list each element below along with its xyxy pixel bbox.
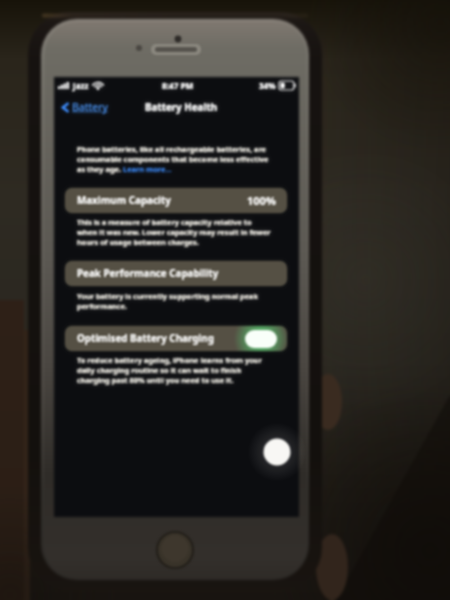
button[interactable]: Peak Performance Capability bbox=[65, 261, 287, 286]
button[interactable]: Maximum Capacity bbox=[65, 188, 287, 213]
staticText: Optimised Battery Charging bbox=[77, 332, 214, 345]
button[interactable]: Peak Performance Capability bbox=[65, 261, 287, 286]
button[interactable]: Optimised Battery Charging switch bbox=[245, 330, 277, 348]
staticText: To reduce battery ageing, iPhone learns … bbox=[77, 355, 262, 365]
other: Back bbox=[62, 102, 69, 113]
staticText: Battery bbox=[72, 100, 108, 114]
staticText: Maximum Capacity bbox=[77, 194, 171, 207]
button[interactable]: Back bbox=[59, 97, 111, 117]
staticText: as they age. bbox=[77, 164, 123, 174]
staticText: Jazz bbox=[73, 80, 89, 91]
button[interactable]: Learn more... bbox=[123, 164, 172, 174]
staticText: as they age. bbox=[77, 164, 123, 174]
staticText: consumable components that become less e… bbox=[77, 154, 269, 164]
staticText: charging past 80% until you need to use … bbox=[77, 375, 234, 385]
button[interactable]: Back bbox=[59, 97, 111, 117]
staticText: Your battery is currently supporting nor… bbox=[77, 291, 259, 301]
staticText: This is a measure of battery capacity re… bbox=[77, 217, 252, 227]
other: Back bbox=[62, 102, 69, 113]
staticText: 100% bbox=[247, 193, 276, 208]
staticText: Optimised Battery Charging bbox=[77, 332, 214, 345]
staticText: 8:47 PM bbox=[162, 80, 194, 91]
button[interactable]: Learn more... bbox=[123, 164, 172, 174]
staticText: hours of usage between charges. bbox=[77, 237, 199, 247]
staticText: when it was new. Lower capacity may resu… bbox=[77, 227, 271, 237]
button[interactable]: Optimised Battery Charging switch bbox=[245, 330, 277, 348]
staticText: To reduce battery ageing, iPhone learns … bbox=[77, 355, 262, 365]
staticText: daily charging routine so it can wait to… bbox=[77, 365, 242, 375]
staticText: Battery Health bbox=[145, 101, 218, 114]
staticText: daily charging routine so it can wait to… bbox=[77, 365, 242, 375]
staticText: 34% bbox=[259, 80, 276, 91]
staticText: Phone batteries, like all rechargeable b… bbox=[77, 144, 266, 154]
button[interactable]: Maximum Capacity bbox=[65, 188, 287, 213]
staticText: Peak Performance Capability bbox=[77, 267, 219, 280]
staticText: Phone batteries, like all rechargeable b… bbox=[77, 144, 266, 154]
staticText: 34% bbox=[259, 80, 276, 91]
staticText: charging past 80% until you need to use … bbox=[77, 375, 234, 385]
staticText: 100% bbox=[247, 193, 276, 208]
staticText: Maximum Capacity bbox=[77, 194, 171, 207]
staticText: consumable components that become less e… bbox=[77, 154, 269, 164]
staticText: Your battery is currently supporting nor… bbox=[77, 291, 259, 301]
staticText: hours of usage between charges. bbox=[77, 237, 199, 247]
staticText: when it was new. Lower capacity may resu… bbox=[77, 227, 271, 237]
button[interactable]: Optimised Battery Charging bbox=[65, 326, 287, 351]
button[interactable]: Optimised Battery Charging bbox=[65, 326, 287, 351]
staticText: Peak Performance Capability bbox=[77, 267, 219, 280]
staticText: Battery bbox=[72, 100, 108, 114]
staticText: 8:47 PM bbox=[162, 80, 194, 91]
staticText: performance. bbox=[77, 301, 127, 311]
staticText: performance. bbox=[77, 301, 127, 311]
staticText: Battery Health bbox=[145, 101, 218, 114]
staticText: This is a measure of battery capacity re… bbox=[77, 217, 252, 227]
staticText: Jazz bbox=[73, 80, 89, 91]
